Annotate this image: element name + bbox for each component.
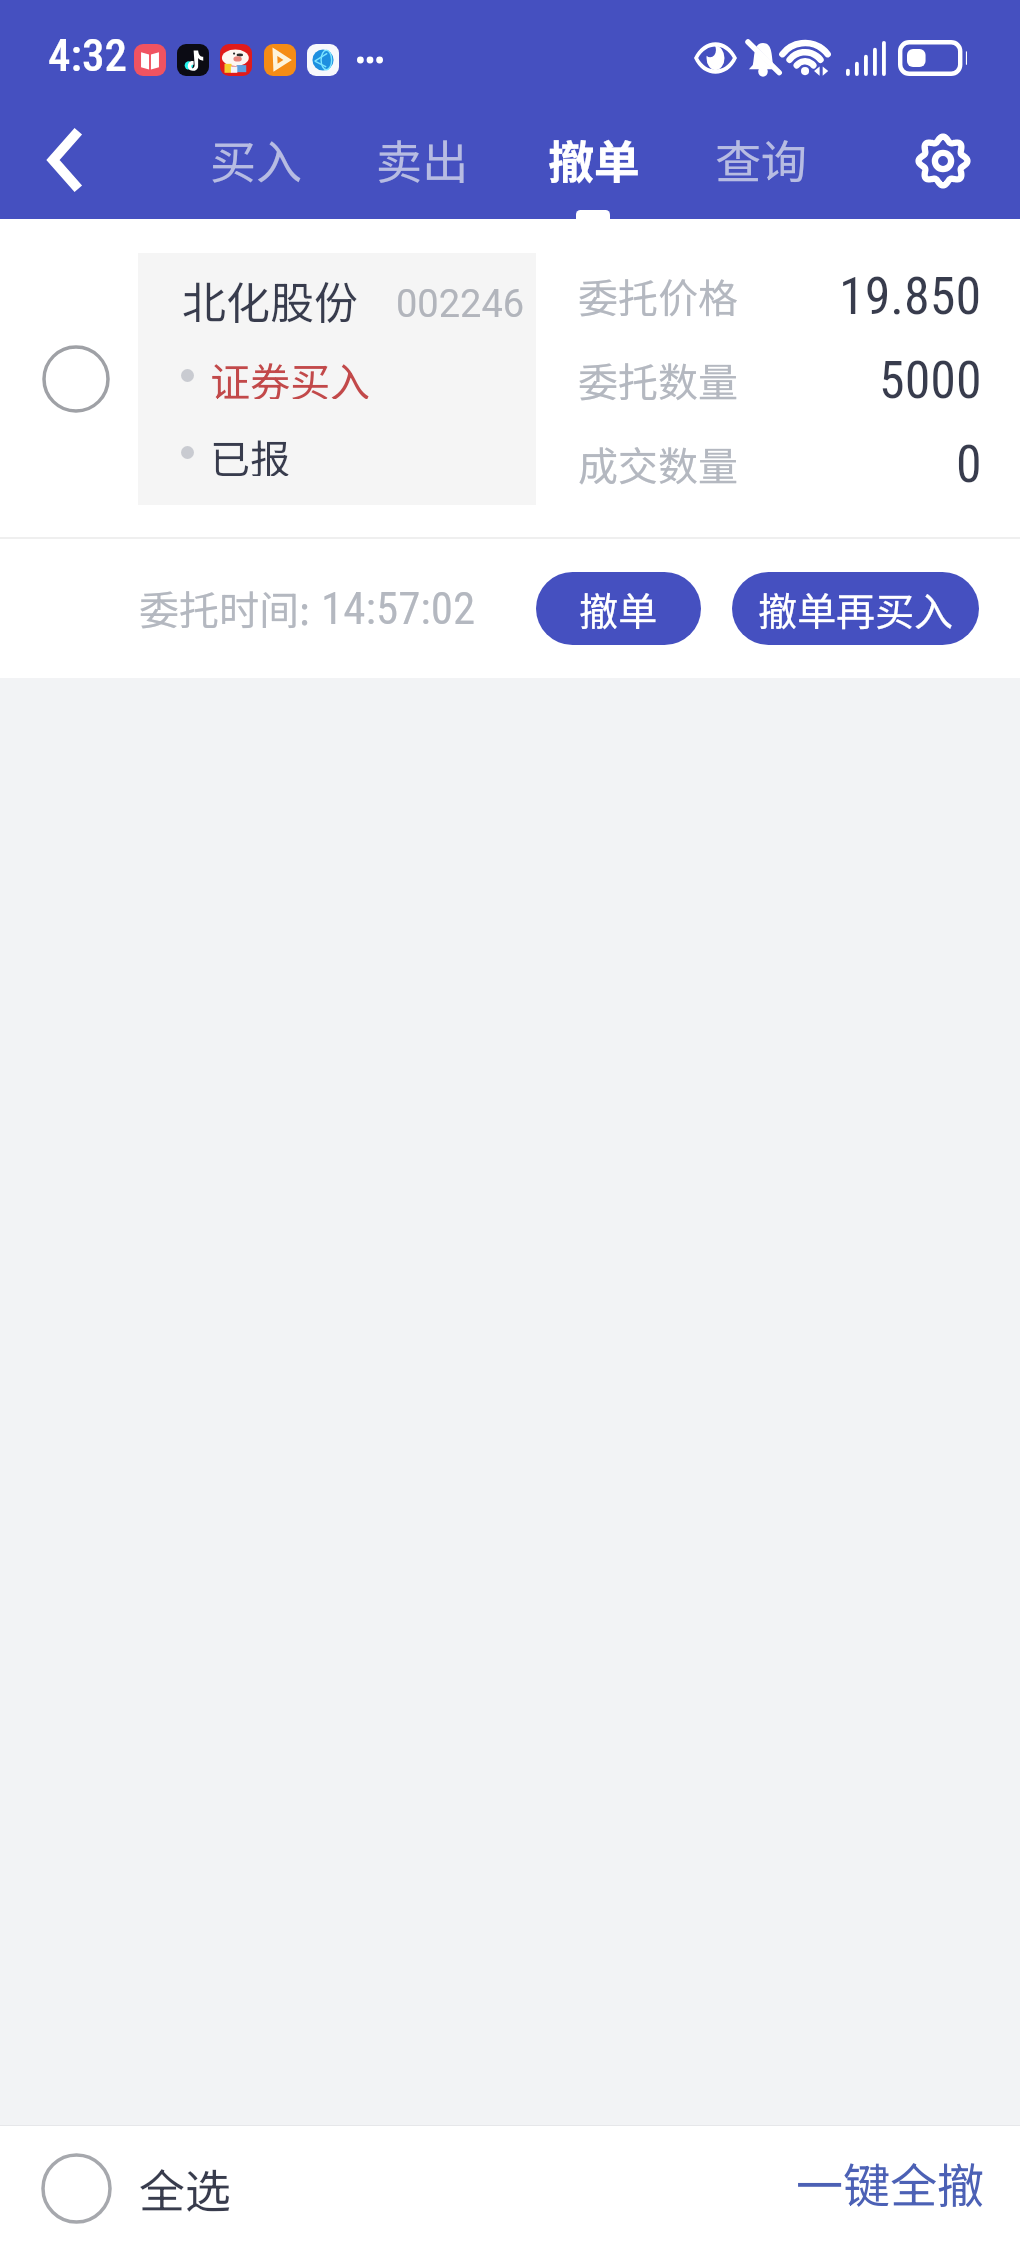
staticText: 0 <box>956 434 982 495</box>
staticText: 北化股份 <box>182 268 358 332</box>
staticText: 14:57:02 <box>321 582 476 635</box>
staticText: 撤单 <box>548 126 640 193</box>
staticText: 买入 <box>210 126 302 193</box>
button[interactable]: Settings <box>888 106 998 215</box>
button[interactable]: 买入 <box>174 105 338 214</box>
staticText: 撤单 <box>579 581 658 637</box>
staticText: 委托时间: <box>139 579 311 637</box>
staticText: 卖出 <box>376 126 468 193</box>
staticText: 一键全撤 <box>796 2148 984 2216</box>
staticText: 全选 <box>139 2155 231 2222</box>
staticText: 4:32 <box>48 29 127 82</box>
button[interactable]: 北化股份 <box>138 253 536 505</box>
button[interactable]: 撤单 <box>536 572 701 645</box>
button[interactable]: 查询 <box>679 105 843 214</box>
staticText: 已报 <box>210 428 290 476</box>
staticText: 19.850 <box>839 266 982 327</box>
staticText: 委托数量 <box>578 351 738 409</box>
staticText: 查询 <box>715 126 807 193</box>
button[interactable]: 全选 <box>26 2133 255 2243</box>
staticText: 成交数量 <box>578 435 738 493</box>
button[interactable]: 卖出 <box>340 105 504 214</box>
button[interactable]: Back <box>9 105 119 214</box>
button[interactable]: 一键全撤 <box>770 2134 1020 2230</box>
staticText: 002246 <box>396 282 525 327</box>
staticText: 证券买入 <box>210 351 370 399</box>
button[interactable]: Select order <box>26 329 126 429</box>
button[interactable]: 撤单再买入 <box>732 572 979 645</box>
staticText: 撤单再买入 <box>758 581 954 637</box>
button[interactable]: 撤单 <box>512 105 676 214</box>
staticText: 5000 <box>879 350 982 411</box>
staticText: 委托价格 <box>578 267 738 325</box>
